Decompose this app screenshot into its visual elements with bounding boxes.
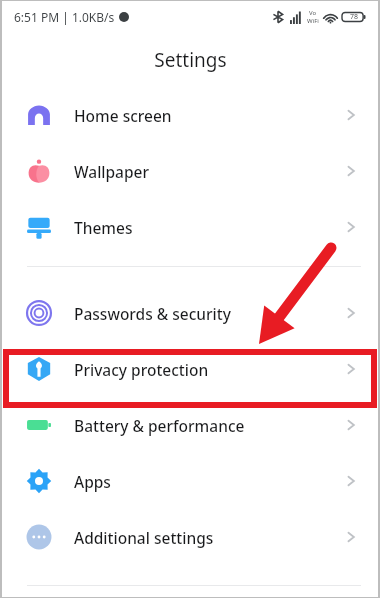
staticText: Wallpaper [74, 161, 150, 182]
staticText: Additional settings [74, 527, 214, 548]
button[interactable]: Wallpaper [2, 143, 378, 199]
staticText: Battery & performance [74, 415, 245, 436]
staticText: Themes [74, 217, 133, 238]
staticText: 78 [350, 12, 359, 22]
staticText: Vo [309, 9, 317, 17]
staticText: Passwords & security [74, 303, 231, 324]
staticText: Home screen [74, 105, 172, 126]
button[interactable]: Passwords & security [2, 285, 378, 341]
staticText: WiFi [307, 17, 319, 25]
button[interactable]: Apps [2, 453, 378, 509]
button[interactable]: Privacy protection [2, 341, 378, 397]
staticText: Privacy protection [74, 359, 209, 380]
button[interactable]: Battery & performance [2, 397, 378, 453]
staticText: Settings [154, 47, 227, 73]
button[interactable]: Home screen [2, 87, 378, 143]
staticText: 6:51 PM | 1.0KB/s [14, 9, 115, 25]
staticText: Apps [74, 471, 111, 492]
button[interactable]: Themes [2, 199, 378, 255]
button[interactable]: Additional settings [2, 509, 378, 565]
